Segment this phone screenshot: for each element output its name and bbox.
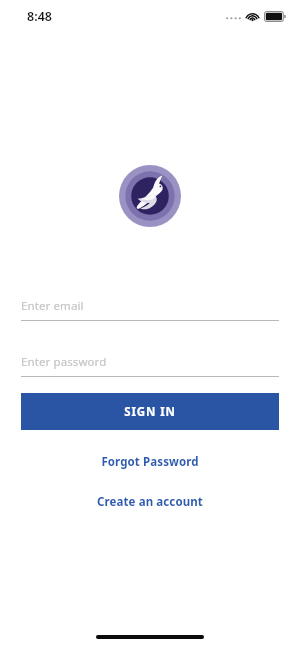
button[interactable]: SIGN IN	[21, 393, 279, 430]
staticText: Enter email	[21, 298, 84, 314]
staticText: Forgot Password	[101, 454, 199, 470]
staticText: Create an account	[97, 494, 203, 510]
button[interactable]: Enter email	[21, 296, 279, 321]
button[interactable]: Enter password	[21, 352, 279, 377]
button[interactable]: Create an account	[0, 488, 300, 516]
staticText: Enter password	[21, 354, 107, 370]
staticText: SIGN IN	[124, 404, 176, 420]
staticText: 8:48	[27, 8, 52, 25]
button[interactable]: Forgot Password	[0, 448, 300, 476]
